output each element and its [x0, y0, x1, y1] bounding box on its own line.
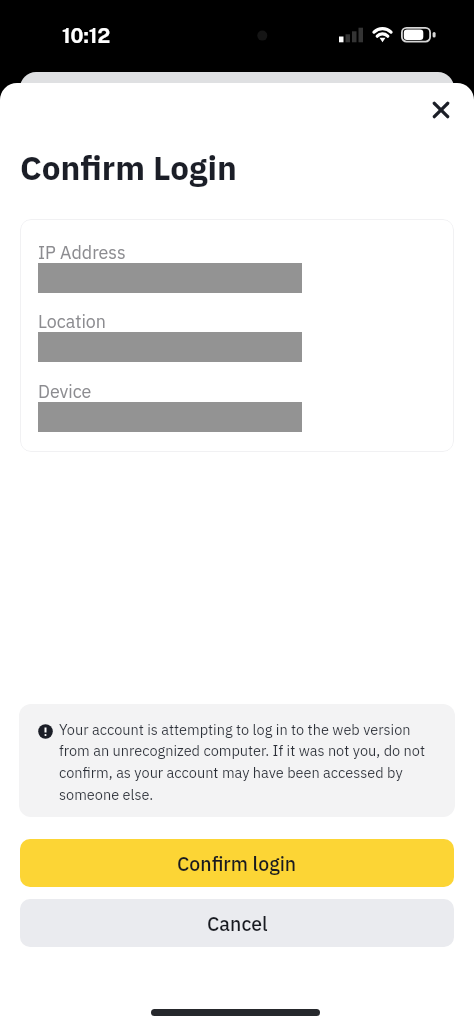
staticText: IP Address [38, 241, 126, 264]
button[interactable]: Cancel [20, 899, 454, 947]
staticText: Location [38, 310, 106, 333]
staticText: 10:12 [62, 24, 111, 48]
staticText: Confirm login [177, 851, 297, 876]
button[interactable]: Confirm login [20, 839, 454, 887]
staticText: Cancel [207, 911, 268, 936]
staticText: Device [38, 380, 92, 403]
button[interactable]: Close [419, 88, 463, 132]
staticText: Your account is attempting to log in to … [59, 720, 443, 804]
staticText: Confirm Login [20, 146, 237, 189]
